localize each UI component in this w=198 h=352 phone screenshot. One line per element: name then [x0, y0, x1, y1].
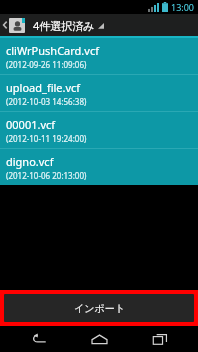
button[interactable]: 00001.vcf [0, 112, 198, 148]
staticText: (2012-09-26 11:09:06) [6, 59, 87, 70]
button[interactable]: cliWrPushCard.vcf [0, 38, 198, 74]
staticText: 00001.vcf [6, 117, 56, 132]
button[interactable]: upload_file.vcf [0, 75, 198, 111]
staticText: (2012-10-11 19:24:00) [6, 133, 87, 144]
button[interactable]: Home [77, 326, 121, 352]
button[interactable]: インポート [4, 294, 194, 322]
staticText: digno.vcf [6, 154, 54, 169]
staticText: 13:00 [171, 1, 195, 13]
button[interactable]: Back [17, 326, 61, 352]
button[interactable]: Contacts [9, 18, 25, 33]
staticText: (2012-10-03 14:56:38) [6, 96, 87, 107]
staticText: upload_file.vcf [6, 80, 81, 95]
staticText: 4件選択済み [33, 18, 95, 33]
button[interactable]: Back [0, 14, 9, 36]
button[interactable]: digno.vcf [0, 149, 198, 185]
button[interactable]: Recent apps [138, 326, 182, 352]
staticText: インポート [74, 302, 125, 315]
staticText: (2012-10-06 20:13:00) [6, 170, 87, 181]
button[interactable]: 4件選択済み [33, 18, 108, 33]
staticText: cliWrPushCard.vcf [6, 43, 99, 58]
